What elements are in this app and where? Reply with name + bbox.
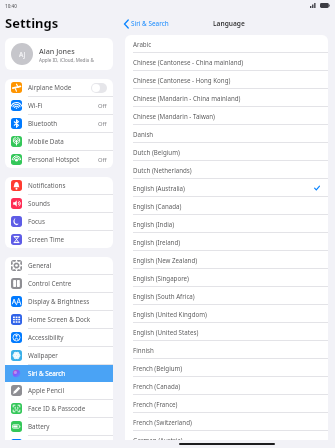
staticText: French (France) <box>133 400 178 408</box>
button[interactable]: French (Canada) <box>125 377 328 394</box>
button[interactable]: English (South Africa) <box>125 287 328 304</box>
staticText: Screen Time <box>28 235 65 244</box>
button[interactable]: Sounds <box>5 195 113 212</box>
button[interactable]: Finnish <box>125 341 328 358</box>
button[interactable]: English (Singapore) <box>125 269 328 286</box>
staticText: French (Switzerland) <box>133 418 192 426</box>
staticText: Accessibility <box>28 333 64 342</box>
button[interactable]: General <box>5 257 113 274</box>
staticText: Home Screen & Dock <box>28 315 91 324</box>
staticText: Danish <box>133 130 154 138</box>
staticText: Wallpaper <box>28 351 58 360</box>
button[interactable]: Screen Time <box>5 231 113 248</box>
button[interactable]: Personal Hotspot <box>5 151 113 168</box>
button[interactable]: Mobile Data <box>5 133 113 150</box>
button[interactable]: English (Australia) <box>125 179 328 196</box>
button[interactable]: Focus <box>5 213 113 230</box>
staticText: French (Belgium) <box>133 364 183 372</box>
staticText: English (Singapore) <box>133 274 189 282</box>
staticText: Control Centre <box>28 279 72 288</box>
staticText: Chinese (Mandarin - Taiwan) <box>133 112 215 120</box>
staticText: English (Canada) <box>133 202 182 210</box>
button[interactable]: French (Switzerland) <box>125 413 328 430</box>
button[interactable]: Dutch (Netherlands) <box>125 161 328 178</box>
staticText: English (Ireland) <box>133 238 181 246</box>
button[interactable]: Dutch (Belgium) <box>125 143 328 160</box>
button[interactable]: Siri & Search <box>5 365 113 382</box>
staticText: Dutch (Netherlands) <box>133 166 192 174</box>
staticText: Apple ID, iCloud, Media & Purchases <box>39 57 107 63</box>
staticText: English (United Kingdom) <box>133 310 207 318</box>
button[interactable]: English (New Zealand) <box>125 251 328 268</box>
button[interactable]: Face ID & Passcode <box>5 400 113 417</box>
staticText: Battery <box>28 422 50 431</box>
staticText: Chinese (Cantonese - Hong Kong) <box>133 76 231 84</box>
staticText: Off <box>98 120 107 128</box>
staticText: Sounds <box>28 199 50 208</box>
button[interactable]: English (Canada) <box>125 197 328 214</box>
staticText: Alan Jones <box>39 46 75 56</box>
button[interactable]: French (Belgium) <box>125 359 328 376</box>
button[interactable]: Privacy <box>5 436 113 440</box>
staticText: Chinese (Mandarin - China mainland) <box>133 94 241 102</box>
staticText: AJ <box>19 50 26 59</box>
staticText: English (India) <box>133 220 175 228</box>
staticText: Siri & Search <box>131 19 169 28</box>
staticText: Notifications <box>28 181 66 190</box>
button[interactable]: Chinese (Cantonese - China mainland) <box>125 53 328 70</box>
staticText: Face ID & Passcode <box>28 404 86 413</box>
button[interactable]: Display & Brightness <box>5 293 113 310</box>
staticText: English (United States) <box>133 328 199 336</box>
button[interactable]: Chinese (Cantonese - Hong Kong) <box>125 71 328 88</box>
staticText: Siri & Search <box>28 369 66 378</box>
button[interactable]: Control Centre <box>5 275 113 292</box>
staticText: Personal Hotspot <box>28 155 80 164</box>
button[interactable]: Battery <box>5 418 113 435</box>
staticText: Language <box>213 19 245 28</box>
staticText: German (Austria) <box>133 436 183 440</box>
staticText: Mobile Data <box>28 137 64 146</box>
button[interactable]: Chinese (Mandarin - Taiwan) <box>125 107 328 124</box>
staticText: Dutch (Belgium) <box>133 148 180 156</box>
button[interactable]: Arabic <box>125 35 328 52</box>
button[interactable]: Notifications <box>5 177 113 194</box>
button[interactable]: English (United Kingdom) <box>125 305 328 322</box>
button[interactable]: German (Austria) <box>125 431 328 440</box>
button[interactable]: Accessibility <box>5 329 113 346</box>
staticText: Chinese (Cantonese - China mainland) <box>133 58 244 66</box>
staticText: Arabic <box>133 40 152 48</box>
staticText: Off <box>98 156 107 164</box>
button[interactable]: English (India) <box>125 215 328 232</box>
button[interactable]: Danish <box>125 125 328 142</box>
staticText: Wi-Fi <box>28 101 43 110</box>
button[interactable]: English (United States) <box>125 323 328 340</box>
button[interactable]: Home Screen & Dock <box>5 311 113 328</box>
staticText: English (South Africa) <box>133 292 195 300</box>
staticText: French (Canada) <box>133 382 181 390</box>
staticText: Airplane Mode <box>28 83 72 92</box>
button[interactable]: Airplane Mode <box>5 79 113 96</box>
button[interactable]: Wallpaper <box>5 347 113 364</box>
button[interactable]: English (Ireland) <box>125 233 328 250</box>
staticText: Finnish <box>133 346 154 354</box>
button[interactable]: AJ <box>5 38 113 70</box>
staticText: General <box>28 261 52 270</box>
staticText: Display & Brightness <box>28 297 90 306</box>
button[interactable]: Wi-Fi <box>5 97 113 114</box>
button[interactable]: Apple Pencil <box>5 382 113 399</box>
staticText: Settings <box>5 14 59 32</box>
button[interactable]: Siri & Search <box>118 16 175 31</box>
button[interactable]: Chinese (Mandarin - China mainland) <box>125 89 328 106</box>
button[interactable]: French (France) <box>125 395 328 412</box>
staticText: English (New Zealand) <box>133 256 198 264</box>
staticText: Bluetooth <box>28 119 58 128</box>
staticText: Focus <box>28 217 46 226</box>
button[interactable]: Bluetooth <box>5 115 113 132</box>
staticText: English (Australia) <box>133 184 185 192</box>
staticText: Off <box>98 102 107 110</box>
staticText: Apple Pencil <box>28 386 65 395</box>
staticText: 10:40 <box>5 3 17 9</box>
